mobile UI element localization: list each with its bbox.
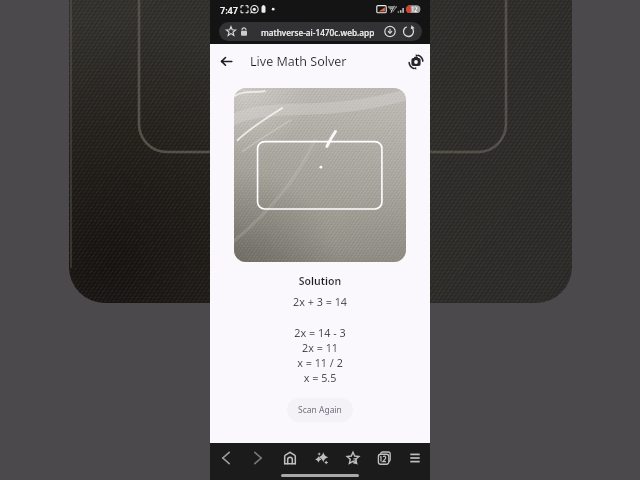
staticText: 2x = 14 - 3 2x = 11 x = 11 / 2 x = 5.5 xyxy=(210,325,430,385)
button[interactable]: Menu xyxy=(399,443,430,472)
button[interactable]: mathverse-ai-1470c.web.app xyxy=(219,22,422,41)
staticText: Live Math Solver xyxy=(250,53,347,70)
staticText: mathverse-ai-1470c.web.app xyxy=(261,27,375,38)
staticText: 2x + 3 = 14 xyxy=(210,294,430,309)
button[interactable]: Back xyxy=(210,44,244,78)
button[interactable]: Tabs xyxy=(368,443,399,472)
button[interactable]: Home xyxy=(274,443,306,472)
button[interactable]: Back xyxy=(210,443,242,472)
button[interactable]: AI assistant xyxy=(306,443,337,472)
button[interactable]: Switch camera xyxy=(399,44,433,78)
button[interactable]: Scan Again xyxy=(287,398,353,422)
staticText: 7:47 xyxy=(220,4,238,16)
button[interactable]: Forward xyxy=(242,443,274,472)
button[interactable]: Bookmarks xyxy=(337,443,368,472)
staticText: Solution xyxy=(210,274,430,288)
staticText: Scan Again xyxy=(298,404,342,416)
